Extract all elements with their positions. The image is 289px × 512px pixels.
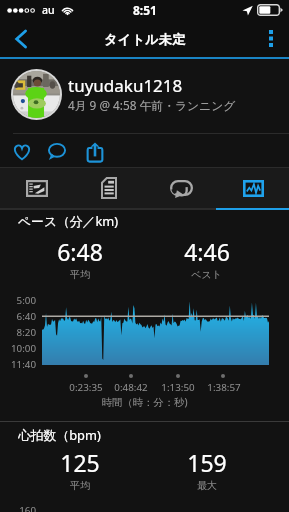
- staticText: タイトル未定: [104, 31, 186, 47]
- staticText: 心拍数（bpm): [18, 426, 101, 443]
- staticText: 平均: [70, 268, 90, 281]
- staticText: 1:38:57: [202, 381, 246, 394]
- button[interactable]: Comment: [41, 135, 73, 168]
- staticText: 4月 9 @ 4:58 午前・ランニング: [68, 97, 236, 113]
- staticText: 8:51: [133, 2, 157, 18]
- staticText: 125: [60, 447, 100, 478]
- staticText: 159: [187, 447, 227, 478]
- staticText: ベスト: [191, 268, 222, 281]
- staticText: 5:00: [0, 294, 36, 307]
- button[interactable]: Map: [0, 168, 73, 208]
- staticText: 160: [0, 504, 36, 512]
- button[interactable]: Back: [0, 20, 42, 57]
- staticText: 10:00: [0, 342, 36, 355]
- staticText: 最大: [197, 479, 217, 492]
- staticText: 11:40: [0, 358, 36, 371]
- staticText: 平均: [70, 479, 90, 492]
- staticText: tuyudaku1218: [68, 74, 183, 97]
- staticText: ペース（分／km): [18, 212, 119, 229]
- staticText: 8:20: [0, 326, 36, 339]
- staticText: 6:48: [57, 236, 103, 267]
- staticText: 4:46: [184, 236, 230, 267]
- staticText: 0:48:42: [109, 381, 153, 394]
- staticText: 6:40: [0, 310, 36, 323]
- staticText: 時間（時：分：秒): [0, 395, 289, 409]
- staticText: 0:23:35: [64, 381, 108, 394]
- button[interactable]: Charts: [217, 168, 289, 208]
- button[interactable]: Like: [6, 135, 38, 168]
- button[interactable]: Share: [79, 135, 111, 168]
- button[interactable]: Laps: [145, 168, 217, 208]
- staticText: 1:13:50: [156, 381, 200, 394]
- staticText: au: [42, 3, 55, 17]
- button[interactable]: Splits: [73, 168, 145, 208]
- button[interactable]: More options: [253, 20, 289, 57]
- button[interactable]: tuyudaku1218: [0, 59, 289, 125]
